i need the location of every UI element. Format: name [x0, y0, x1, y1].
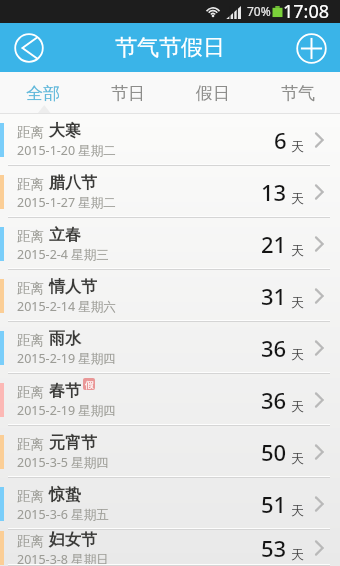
staticText: 2015-1-20 星期二 [17, 142, 116, 159]
button[interactable]: 距离 [0, 530, 340, 566]
button[interactable]: 添加 [290, 27, 332, 69]
staticText: 36 [261, 385, 287, 415]
staticText: 2015-2-14 星期六 [17, 298, 116, 315]
button[interactable]: 假日 [170, 72, 255, 114]
staticText: 天 [291, 242, 304, 258]
staticText: 53 [261, 533, 287, 563]
staticText: 距离 [17, 228, 44, 245]
button[interactable]: 距离 [0, 322, 340, 374]
staticText: 50 [261, 437, 287, 467]
staticText: 节日 [111, 83, 145, 104]
button[interactable]: 距离 [0, 218, 340, 270]
button[interactable]: 距离 [0, 478, 340, 530]
staticText: 惊蛰 [49, 485, 81, 505]
staticText: 2015-2-19 星期四 [17, 350, 116, 367]
staticText: 2015-3-5 星期四 [17, 454, 109, 471]
staticText: 31 [261, 281, 287, 311]
staticText: 天 [291, 502, 304, 518]
staticText: 春节 [49, 381, 81, 401]
staticText: 70% [247, 3, 271, 19]
staticText: 天 [291, 346, 304, 362]
staticText: 天 [291, 546, 304, 562]
staticText: 元宵节 [49, 433, 97, 453]
staticText: 妇女节 [49, 530, 97, 550]
staticText: 距离 [17, 488, 44, 505]
staticText: 2015-3-6 星期五 [17, 506, 109, 523]
button[interactable]: 节日 [85, 72, 170, 114]
staticText: 距离 [17, 436, 44, 453]
staticText: 天 [291, 190, 304, 206]
button[interactable]: 距离 [0, 270, 340, 322]
staticText: 2015-1-27 星期二 [17, 194, 116, 211]
staticText: 天 [291, 138, 304, 154]
staticText: 17:08 [283, 0, 330, 22]
staticText: 距离 [17, 280, 44, 297]
button[interactable]: 距离 [0, 374, 340, 426]
staticText: 距离 [17, 124, 44, 141]
staticText: 天 [291, 294, 304, 310]
staticText: 天 [291, 398, 304, 414]
staticText: 节气节假日 [115, 34, 225, 62]
staticText: 立春 [49, 225, 81, 245]
staticText: 全部 [26, 83, 60, 104]
staticText: 距离 [17, 176, 44, 193]
button[interactable]: 距离 [0, 166, 340, 218]
staticText: 假日 [196, 83, 230, 104]
staticText: 假 [85, 379, 94, 390]
staticText: 距离 [17, 384, 44, 401]
staticText: 2015-2-4 星期三 [17, 246, 109, 263]
staticText: 距离 [17, 332, 44, 349]
staticText: 雨水 [49, 329, 81, 349]
staticText: 情人节 [49, 277, 97, 297]
staticText: 天 [291, 450, 304, 466]
staticText: 2015-3-8 星期日 [17, 551, 109, 566]
staticText: 节气 [281, 83, 315, 104]
staticText: 腊八节 [49, 173, 97, 193]
button[interactable]: 距离 [0, 426, 340, 478]
button[interactable]: 全部 [0, 72, 85, 114]
staticText: 6 [274, 125, 287, 155]
staticText: 36 [261, 333, 287, 363]
staticText: 2015-2-19 星期四 [17, 402, 116, 419]
staticText: 大寒 [49, 121, 81, 141]
staticText: 13 [261, 177, 287, 207]
staticText: 距离 [17, 533, 44, 550]
staticText: 21 [261, 229, 287, 259]
button[interactable]: 距离 [0, 114, 340, 166]
button[interactable]: 返回 [8, 27, 50, 69]
staticText: 51 [261, 489, 287, 519]
button[interactable]: 节气 [255, 72, 340, 114]
